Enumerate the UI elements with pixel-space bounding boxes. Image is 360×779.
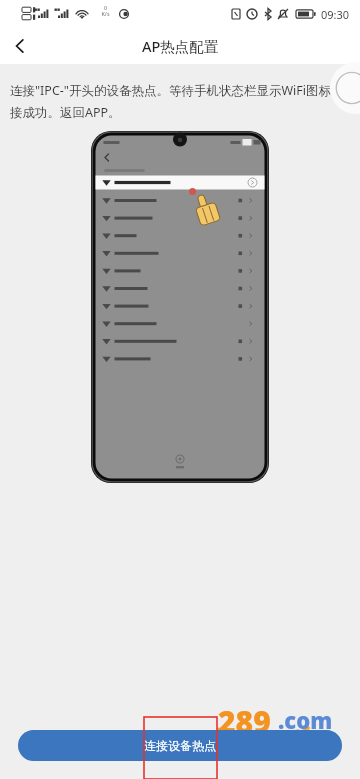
button[interactable]: Floating assistant [330,62,360,114]
staticText: 连接设备热点 [144,738,216,753]
staticText: AP热点配置 [142,36,219,56]
staticText: 09:30 [321,7,350,22]
button[interactable]: Back [0,28,40,64]
staticText: 289 [218,701,271,742]
staticText: 手游网 [286,729,331,748]
staticText: .com [278,705,333,735]
button[interactable]: 连接设备热点 [18,730,342,761]
staticText: 连接"IPC-"开头的设备热点。等待手机状态栏显示WiFi图标连接成功。返回AP… [10,82,346,121]
staticText: 0 K/s [101,4,110,18]
